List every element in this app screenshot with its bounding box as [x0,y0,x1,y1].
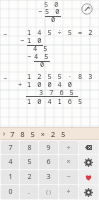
staticText: + [66,187,71,197]
staticText: − [20,36,26,46]
staticText: 1 0 4 1 6 5 [27,97,84,107]
staticText: − [66,172,71,182]
staticText: 5 0 [44,0,60,10]
staticText: 5 [27,157,32,167]
button[interactable]: Favorite [79,170,98,184]
button[interactable]: ( ) [39,185,58,199]
staticText: − [38,7,44,17]
staticText: 0 [8,187,13,197]
staticText: 9 [46,143,51,153]
staticText: − [27,52,33,62]
button[interactable]: 6 [39,155,58,169]
button[interactable]: 0 [1,185,19,199]
staticText: 3 [46,172,51,182]
staticText: × [66,157,71,167]
button[interactable]: 2 [20,170,38,184]
staticText: 5 0 [45,7,61,17]
staticText: 7 8 5 × 2 5 [10,129,67,139]
button[interactable]: More options [79,185,98,199]
button[interactable]: 9 [39,141,58,154]
button[interactable]: Backspace [79,141,98,154]
staticText: − [3,74,9,84]
staticText: ( ) [46,189,51,196]
button[interactable]: 7 [1,141,19,154]
staticText: 8 [27,143,32,153]
button[interactable]: 8 [20,141,38,154]
button[interactable]: 3 [39,170,58,184]
button[interactable]: 5 [20,155,38,169]
staticText: 2 [27,172,32,182]
button[interactable]: ÷ [59,141,78,154]
button[interactable]: Note marker [81,3,93,15]
button[interactable]: . [20,185,38,199]
staticText: 6 [46,157,51,167]
staticText: › [2,129,7,139]
staticText: 4 [8,157,13,167]
staticText: + [18,80,24,90]
staticText: ÷ [66,143,71,153]
button[interactable]: › [0,127,99,140]
button[interactable]: + [59,185,78,199]
staticText: 4 5 [34,52,50,62]
staticText: − [3,30,9,40]
staticText: 1 2 5 5 · 8 3 [27,72,94,82]
staticText: 3 7 6 5 [39,88,75,98]
staticText: 0 [51,15,57,25]
button[interactable]: × [59,155,78,169]
button[interactable]: 1 [1,170,19,184]
button[interactable]: − [59,170,78,184]
staticText: 1 [8,172,13,182]
staticText: 1 4 5 ÷ 5 = 2 9 [27,28,99,38]
staticText: 1 0 [27,36,43,46]
staticText: . [28,187,30,197]
button[interactable]: 4 [1,155,19,169]
staticText: 4 5 [33,44,49,54]
staticText: 7 [8,143,13,153]
staticText: 1 0 0 4 0 [27,80,73,90]
staticText: 0 [40,60,46,70]
button[interactable]: Settings [79,155,98,169]
